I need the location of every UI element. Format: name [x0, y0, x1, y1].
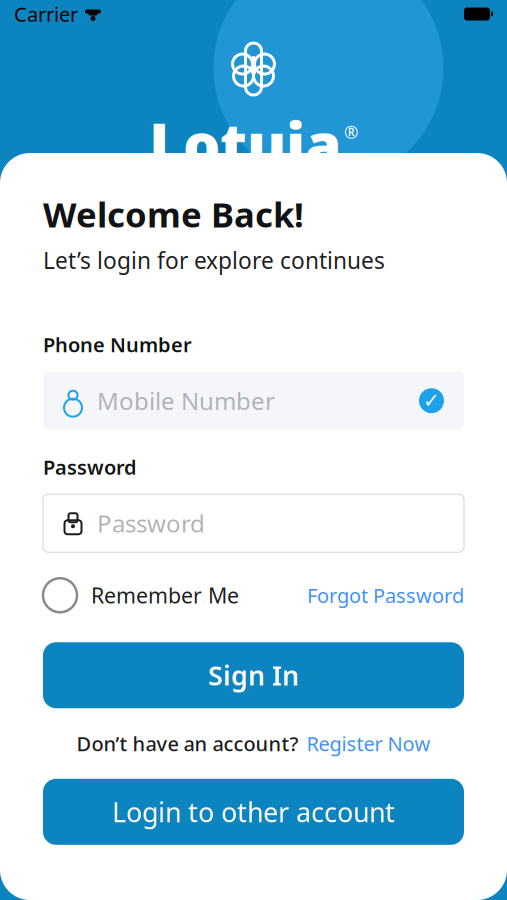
staticText: Phone Number [43, 331, 192, 358]
button[interactable]: Login to other account [43, 779, 464, 845]
staticText: ✓ [423, 389, 440, 412]
button[interactable]: Forgot Password [307, 582, 464, 609]
button[interactable]: Register Now [306, 730, 430, 757]
staticText: Forgot Password [307, 582, 464, 609]
button[interactable]: Remember Me [43, 578, 239, 612]
staticText: Carrier [14, 1, 78, 27]
staticText: Welcome Back! [43, 191, 304, 237]
staticText: Let’s login for explore continues [43, 245, 385, 275]
staticText: ® [344, 120, 358, 143]
staticText: Mobile Number [97, 385, 275, 417]
staticText: Sign In [208, 658, 299, 693]
staticText: Lotuia [149, 104, 342, 182]
staticText: Register Now [306, 730, 430, 757]
staticText: Password [43, 454, 137, 480]
button[interactable]: Sign In [43, 642, 464, 708]
staticText: Login to other account [112, 794, 395, 829]
staticText: Password [97, 507, 205, 539]
staticText: Don’t have an account? [76, 730, 298, 757]
staticText: Remember Me [91, 581, 239, 609]
